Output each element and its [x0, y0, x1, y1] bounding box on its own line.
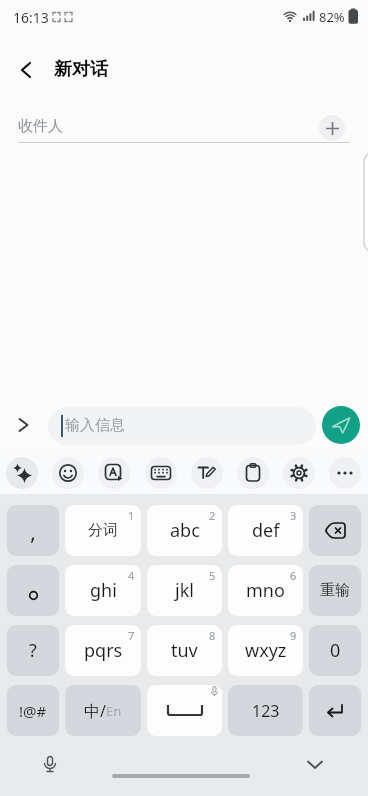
- staticText: abc: [170, 518, 200, 543]
- staticText: !@#: [19, 701, 47, 721]
- staticText: 16:13: [13, 8, 49, 27]
- staticText: 中/: [84, 700, 106, 722]
- button[interactable]: 重输: [309, 565, 361, 616]
- button[interactable]: 123: [228, 685, 303, 736]
- staticText: pqrs: [84, 638, 123, 663]
- staticText: 2: [209, 508, 216, 523]
- staticText: 0: [330, 638, 341, 663]
- button[interactable]: !@#: [7, 685, 59, 736]
- staticText: ?: [29, 638, 37, 663]
- staticText: mno: [246, 578, 285, 603]
- staticText: 7: [128, 628, 135, 643]
- staticText: 6: [290, 568, 297, 583]
- button[interactable]: 分词: [65, 505, 141, 556]
- staticText: wxyz: [245, 638, 287, 663]
- staticText: 收件人: [18, 117, 63, 136]
- button[interactable]: [191, 457, 223, 489]
- button[interactable]: [319, 115, 345, 141]
- staticText: tuv: [171, 638, 198, 663]
- button[interactable]: [6, 457, 38, 489]
- button[interactable]: [8, 410, 38, 440]
- button[interactable]: mno: [228, 565, 303, 616]
- staticText: 输入信息: [65, 416, 125, 435]
- staticText: def: [252, 518, 280, 543]
- button[interactable]: [52, 457, 84, 489]
- staticText: 新对话: [54, 58, 108, 81]
- button[interactable]: abc: [147, 505, 222, 556]
- button[interactable]: ?: [7, 625, 59, 676]
- staticText: 3: [290, 508, 297, 523]
- button[interactable]: 0: [309, 625, 361, 676]
- staticText: 4: [128, 568, 135, 583]
- button[interactable]: [145, 457, 177, 489]
- staticText: En: [106, 702, 122, 720]
- staticText: 8: [209, 628, 216, 643]
- button[interactable]: wxyz: [228, 625, 303, 676]
- staticText: 重输: [320, 581, 350, 600]
- button[interactable]: [309, 685, 361, 736]
- button[interactable]: 中/: [65, 685, 141, 736]
- button[interactable]: [237, 457, 269, 489]
- button[interactable]: 输入信息: [48, 407, 316, 445]
- button[interactable]: tuv: [147, 625, 222, 676]
- button[interactable]: jkl: [147, 565, 222, 616]
- staticText: 9: [290, 628, 297, 643]
- button[interactable]: def: [228, 505, 303, 556]
- staticText: ,: [30, 516, 36, 546]
- staticText: ghi: [90, 578, 117, 603]
- button[interactable]: [329, 457, 361, 489]
- button[interactable]: [147, 685, 222, 736]
- staticText: jkl: [175, 578, 194, 603]
- staticText: 分词: [88, 521, 118, 540]
- button[interactable]: [98, 457, 130, 489]
- staticText: 123: [252, 700, 280, 722]
- staticText: 5: [209, 568, 216, 583]
- staticText: 82%: [319, 8, 345, 26]
- button[interactable]: [283, 457, 315, 489]
- button[interactable]: [322, 406, 360, 444]
- button[interactable]: [309, 505, 361, 556]
- button[interactable]: [7, 565, 59, 616]
- button[interactable]: ghi: [65, 565, 141, 616]
- button[interactable]: pqrs: [65, 625, 141, 676]
- button[interactable]: ,: [7, 505, 59, 556]
- staticText: 1: [128, 508, 135, 523]
- button[interactable]: [8, 52, 44, 88]
